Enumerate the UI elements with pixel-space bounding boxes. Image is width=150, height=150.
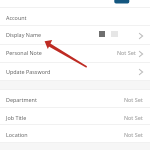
button[interactable]: Job Title xyxy=(0,108,150,126)
staticText: Personal Note xyxy=(6,49,42,56)
other: Open xyxy=(139,51,143,57)
staticText: Update Password xyxy=(6,68,51,75)
button[interactable]: Display Name xyxy=(0,26,150,45)
staticText: Job Title xyxy=(6,114,27,121)
staticText: Not Set xyxy=(124,96,143,103)
staticText: Not Set xyxy=(117,49,136,56)
staticText: Not Set xyxy=(124,114,143,121)
button[interactable]: Department xyxy=(0,89,150,107)
staticText: Account xyxy=(6,14,27,21)
staticText: Location xyxy=(6,131,28,138)
other: Open xyxy=(139,33,143,39)
staticText: Department xyxy=(6,96,37,103)
staticText: Display Name xyxy=(6,31,41,38)
staticText: Not Set xyxy=(124,131,143,138)
other: Open xyxy=(139,69,143,75)
button[interactable]: Location xyxy=(0,125,150,143)
button[interactable]: Update Password xyxy=(0,63,150,81)
button[interactable]: Account xyxy=(0,7,150,26)
button[interactable]: Personal Note xyxy=(0,44,150,63)
